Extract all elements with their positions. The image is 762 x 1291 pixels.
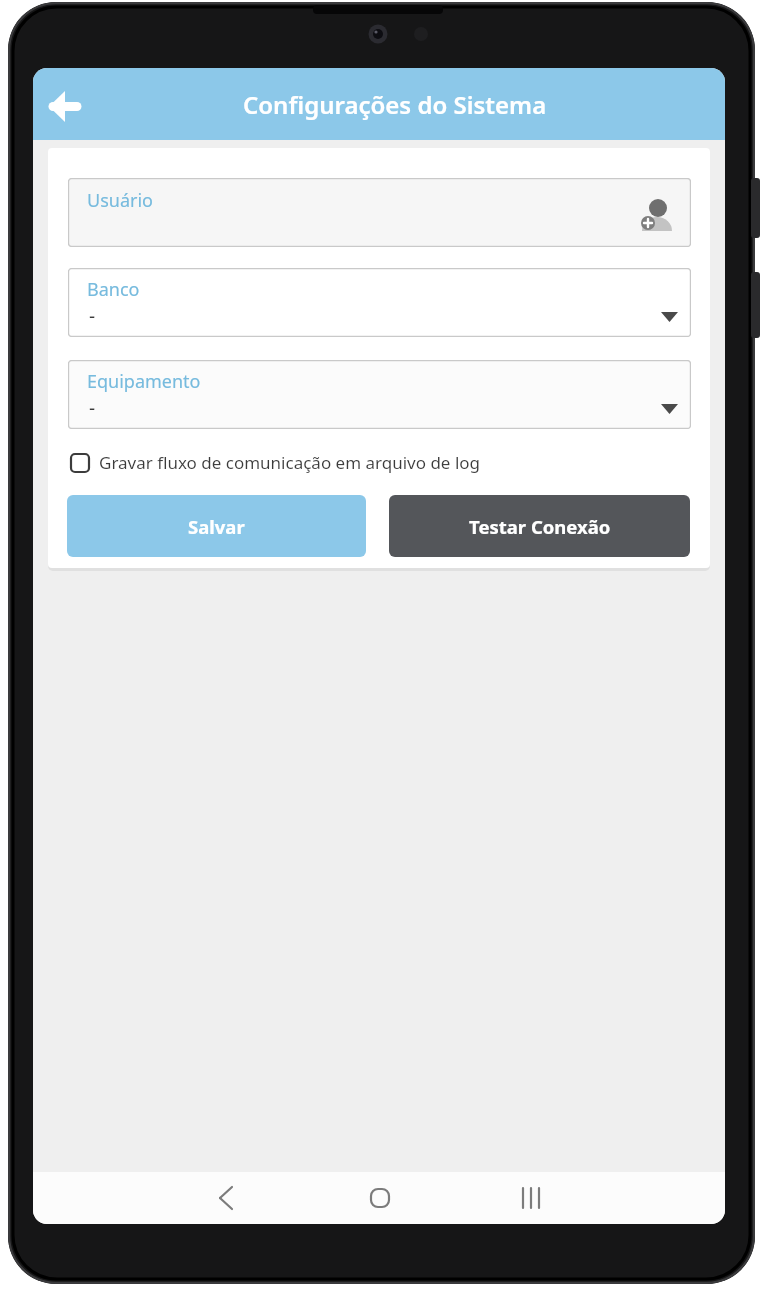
staticText: Gravar fluxo de comunicação em arquivo d… — [99, 451, 481, 474]
button[interactable] — [358, 1176, 402, 1220]
button[interactable] — [204, 1176, 248, 1220]
staticText: - — [89, 395, 96, 421]
button[interactable]: Usuário — [68, 178, 691, 247]
button[interactable] — [41, 84, 85, 128]
staticText: Usuário — [87, 188, 153, 213]
staticText: - — [89, 303, 96, 329]
button[interactable]: Banco — [68, 268, 691, 337]
staticText: Banco — [87, 277, 140, 302]
button[interactable]: Salvar — [67, 495, 366, 557]
button[interactable]: Testar Conexão — [389, 495, 690, 557]
staticText: Equipamento — [87, 369, 201, 394]
button[interactable] — [509, 1176, 553, 1220]
staticText: Testar Conexão — [469, 514, 611, 539]
button[interactable]: Equipamento — [68, 360, 691, 429]
button[interactable]: Gravar fluxo de comunicação em arquivo d… — [70, 451, 481, 474]
staticText: Configurações do Sistema — [243, 88, 547, 121]
staticText: Salvar — [188, 514, 245, 539]
